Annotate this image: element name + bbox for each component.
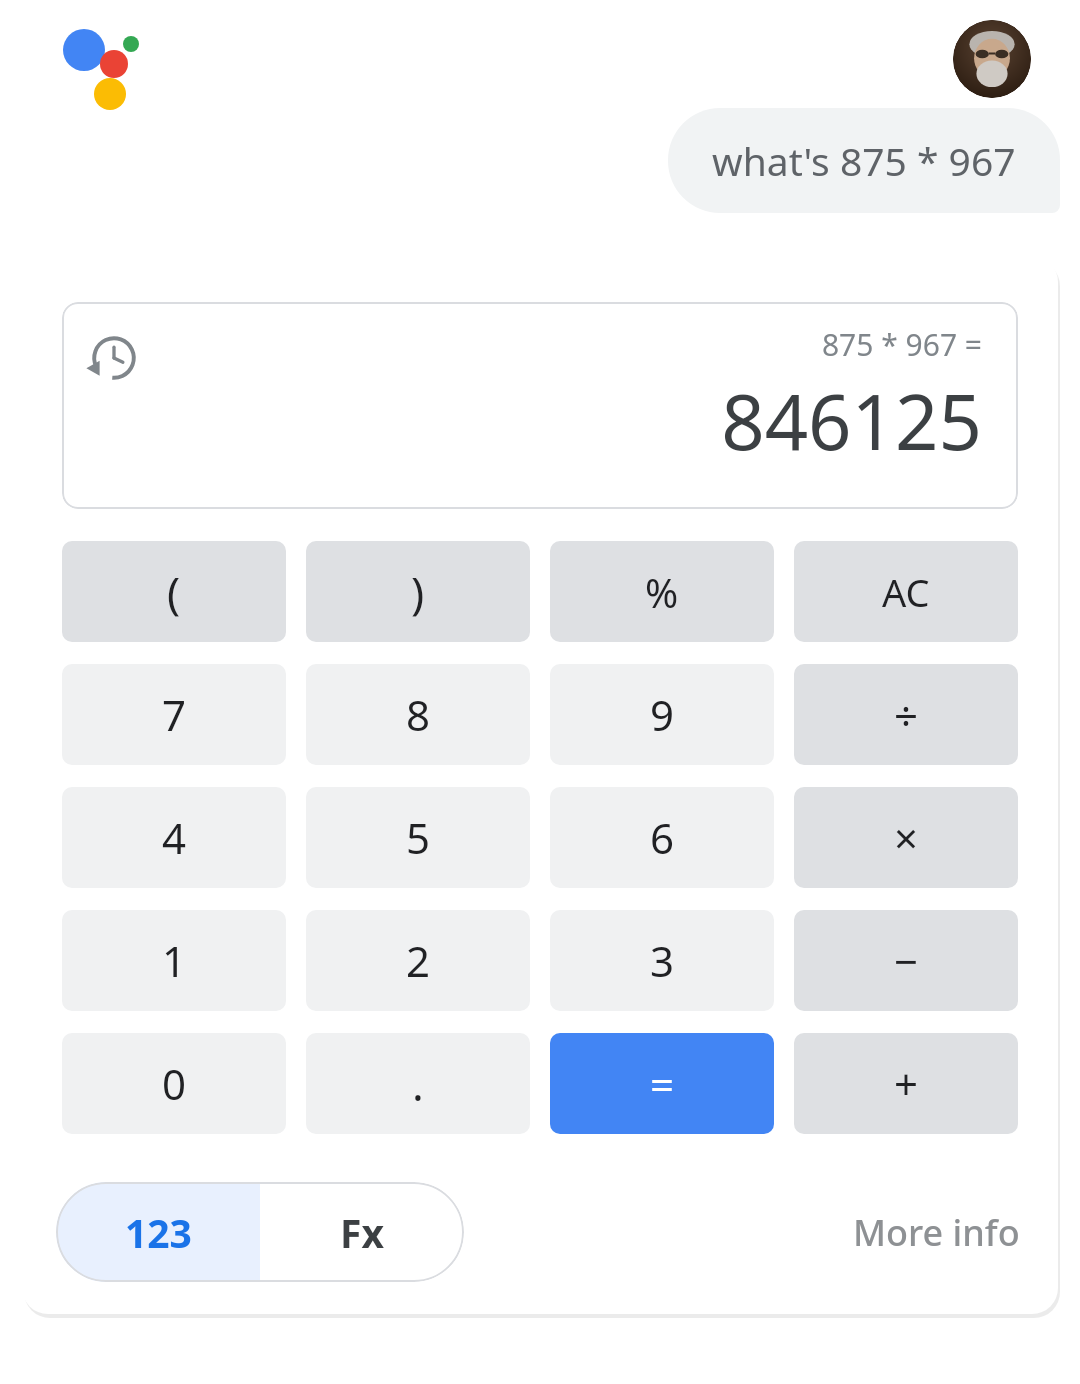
staticText: 4 [162, 809, 187, 866]
staticText: Fx [340, 1206, 384, 1259]
staticText: ÷ [894, 686, 919, 743]
button[interactable]: 0 [62, 1033, 286, 1134]
staticText: 7 [162, 686, 187, 743]
staticText: = [650, 1055, 675, 1112]
button[interactable]: 3 [550, 910, 774, 1011]
staticText: ( [167, 562, 181, 622]
button[interactable]: + [794, 1033, 1018, 1134]
staticText: − [894, 932, 919, 989]
button[interactable]: Fx [260, 1182, 464, 1282]
button[interactable]: 1 [62, 910, 286, 1011]
button[interactable]: . [306, 1033, 530, 1134]
button[interactable]: 8 [306, 664, 530, 765]
staticText: 3 [650, 932, 675, 989]
staticText: 9 [650, 686, 675, 743]
button[interactable]: More info [849, 1202, 1024, 1263]
button[interactable]: AC [794, 541, 1018, 642]
button[interactable]: ) [306, 541, 530, 642]
staticText: 5 [406, 809, 431, 866]
button[interactable]: Google Assistant [58, 24, 138, 104]
staticText: 875 * 967 = [821, 324, 982, 365]
staticText: what's 875 * 967 [712, 134, 1016, 187]
button[interactable]: 6 [550, 787, 774, 888]
button[interactable]: % [550, 541, 774, 642]
button[interactable]: 5 [306, 787, 530, 888]
staticText: 0 [162, 1055, 187, 1112]
button[interactable]: 4 [62, 787, 286, 888]
staticText: 123 [125, 1206, 192, 1259]
staticText: ) [411, 562, 425, 622]
staticText: . [412, 1054, 424, 1114]
staticText: AC [882, 566, 930, 618]
button[interactable]: 9 [550, 664, 774, 765]
staticText: 1 [162, 932, 187, 989]
staticText: % [645, 565, 679, 619]
button[interactable]: × [794, 787, 1018, 888]
button[interactable]: ( [62, 541, 286, 642]
button[interactable]: 2 [306, 910, 530, 1011]
staticText: 2 [406, 932, 431, 989]
staticText: 8 [406, 686, 431, 743]
button[interactable]: History [88, 332, 140, 384]
staticText: More info [853, 1208, 1020, 1257]
button[interactable]: ÷ [794, 664, 1018, 765]
button[interactable]: − [794, 910, 1018, 1011]
staticText: + [894, 1055, 919, 1112]
staticText: 6 [650, 809, 675, 866]
staticText: 846125 [721, 369, 982, 473]
button[interactable]: 7 [62, 664, 286, 765]
staticText: × [894, 809, 919, 866]
button[interactable]: = [550, 1033, 774, 1134]
button[interactable]: 123 [56, 1182, 260, 1282]
button[interactable]: what's 875 * 967 [668, 108, 1060, 213]
button[interactable]: Account [953, 20, 1031, 98]
